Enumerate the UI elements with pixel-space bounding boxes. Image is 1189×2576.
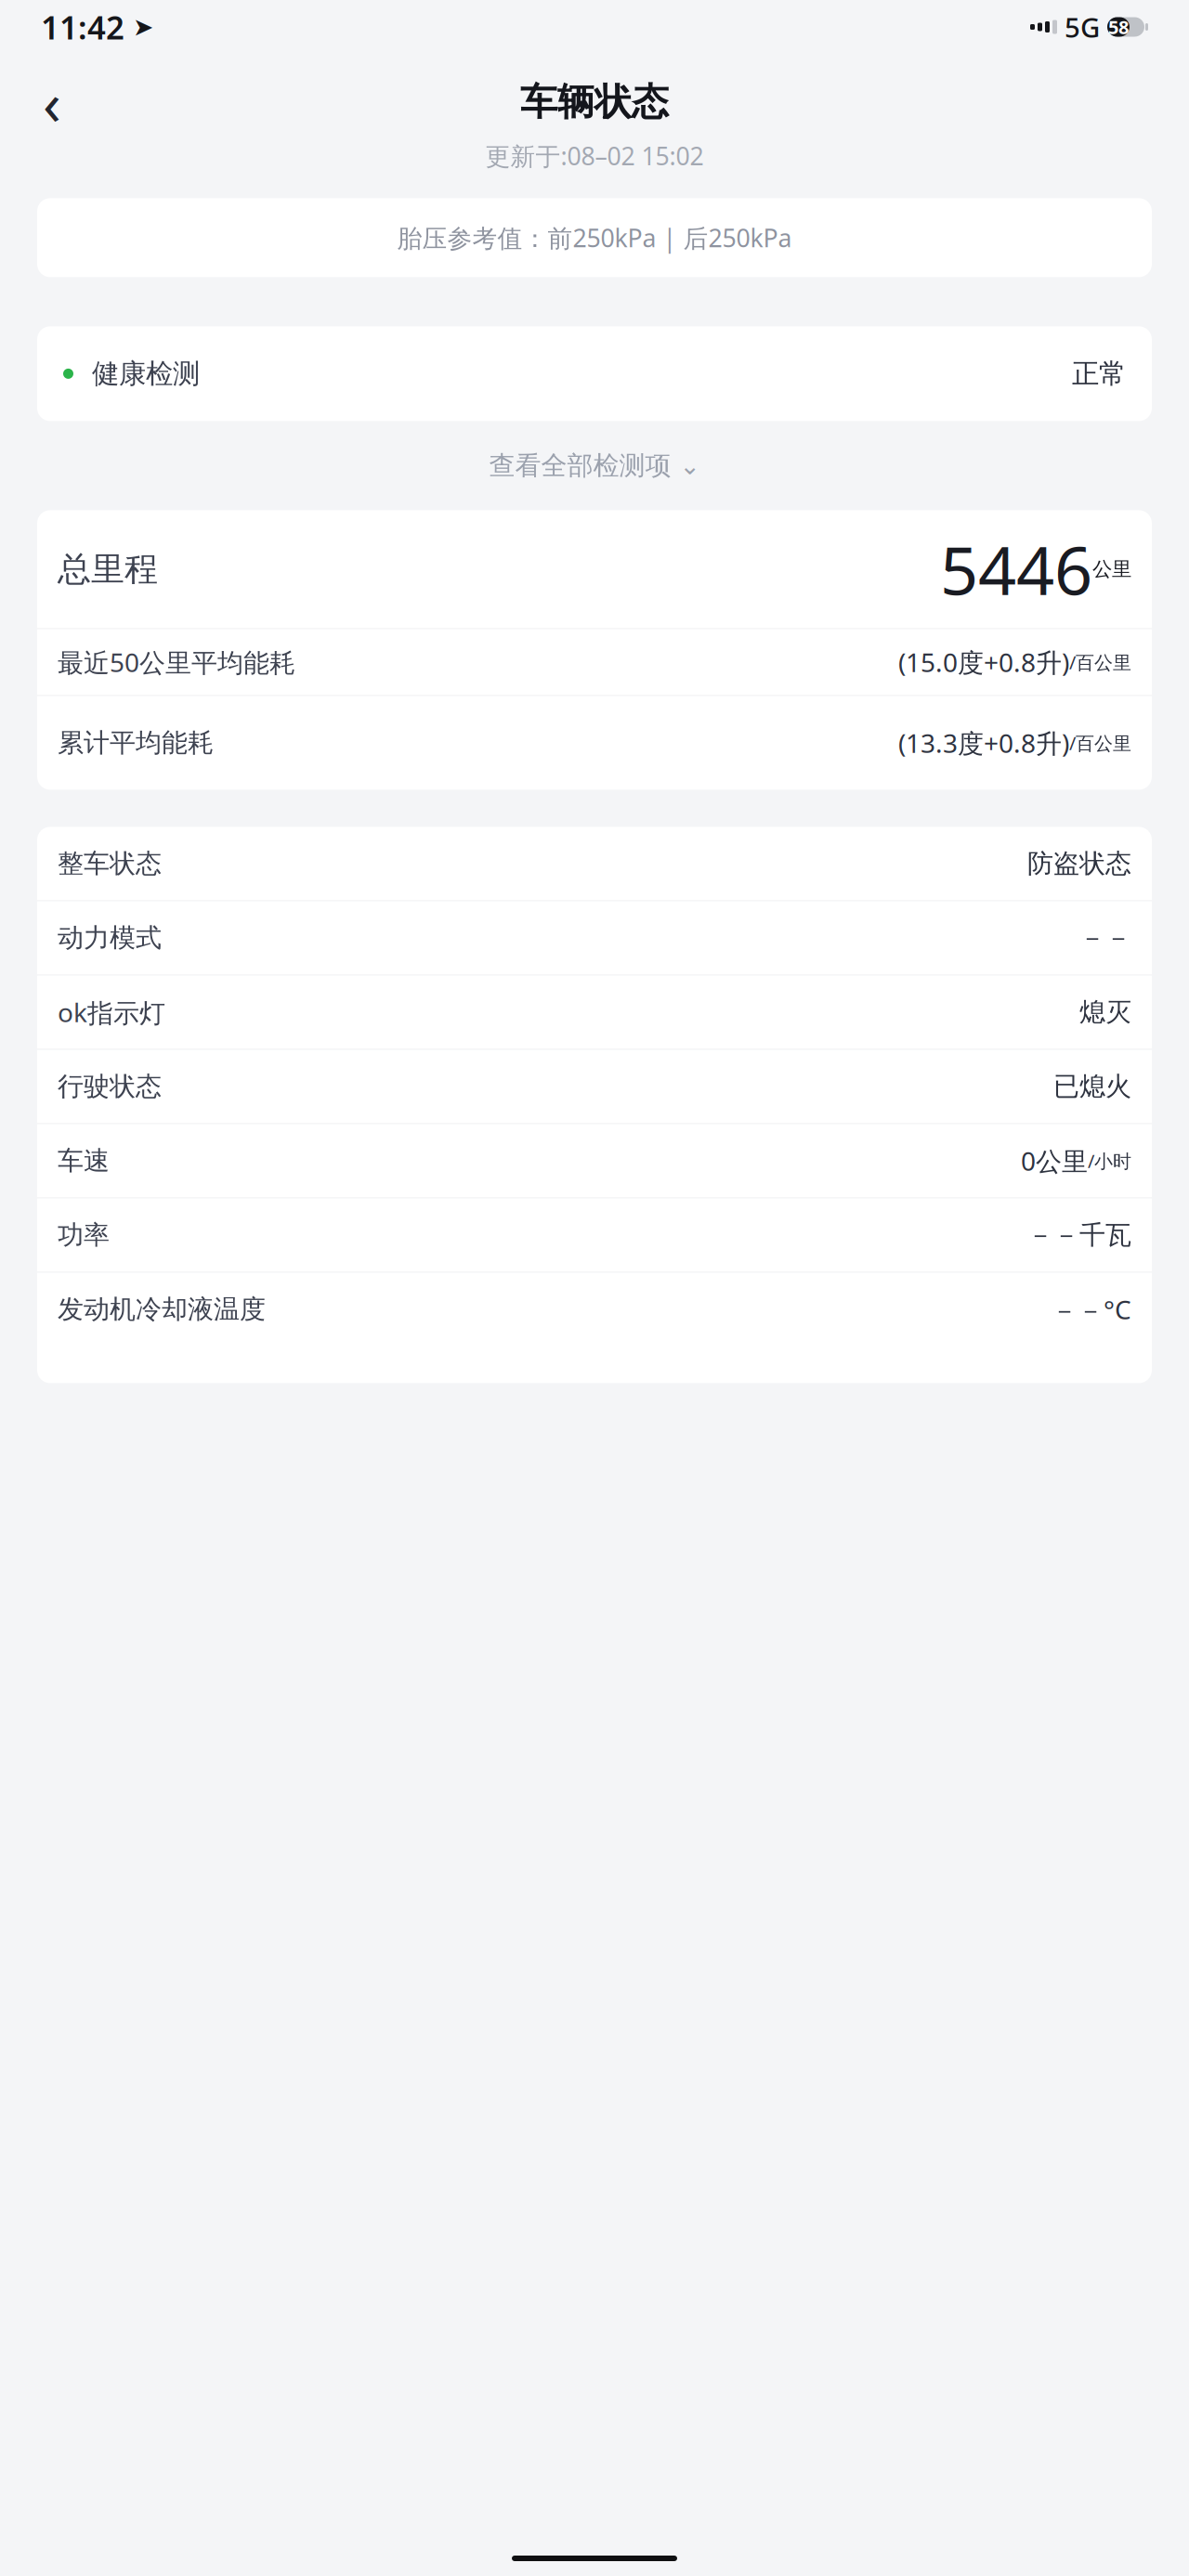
staticText: －－: [1079, 922, 1131, 954]
staticText: 车辆状态: [520, 79, 669, 125]
staticText: ➤: [124, 13, 153, 41]
staticText: /百公里: [1069, 730, 1131, 755]
staticText: (15.0度+0.8升): [898, 645, 1069, 679]
staticText: /百公里: [1069, 650, 1131, 674]
staticText: ⌄: [679, 452, 700, 480]
staticText: 5446: [940, 525, 1092, 614]
staticText: (13.3度+0.8升): [898, 726, 1069, 760]
staticText: 正常: [1072, 357, 1126, 390]
staticText: 5G: [1065, 9, 1100, 45]
staticText: 整车状态: [58, 848, 162, 879]
staticText: 发动机冷却液温度: [58, 1293, 266, 1325]
staticText: 11:42: [41, 6, 124, 48]
staticText: 已熄火: [1053, 1070, 1131, 1102]
staticText: －－千瓦: [1027, 1219, 1131, 1251]
staticText: 0公里: [1021, 1143, 1088, 1178]
staticText: －－°C: [1052, 1292, 1131, 1327]
button[interactable]: 查看全部检测项: [37, 445, 1152, 486]
staticText: 防盗状态: [1027, 848, 1131, 879]
staticText: ok指示灯: [58, 995, 165, 1029]
staticText: 功率: [58, 1219, 110, 1251]
staticText: 58: [1108, 15, 1129, 39]
staticText: ‹: [43, 63, 61, 142]
staticText: 行驶状态: [58, 1070, 162, 1102]
button[interactable]: 返回: [26, 76, 78, 128]
staticText: 动力模式: [58, 922, 162, 954]
staticText: 查看全部检测项: [489, 450, 671, 482]
staticText: 总里程: [58, 549, 158, 590]
staticText: 健康检测: [92, 357, 200, 390]
staticText: 公里: [1092, 557, 1131, 581]
staticText: 更新于:08–02 15:02: [485, 139, 704, 172]
staticText: 累计平均能耗: [58, 727, 214, 759]
staticText: 胎压参考值：前250kPa | 后250kPa: [397, 221, 792, 254]
staticText: 熄灭: [1079, 996, 1131, 1028]
staticText: 最近50公里平均能耗: [58, 645, 295, 679]
button[interactable]: 健康检测: [37, 326, 1152, 421]
staticText: 车速: [58, 1145, 110, 1177]
staticText: /小时: [1088, 1148, 1131, 1173]
